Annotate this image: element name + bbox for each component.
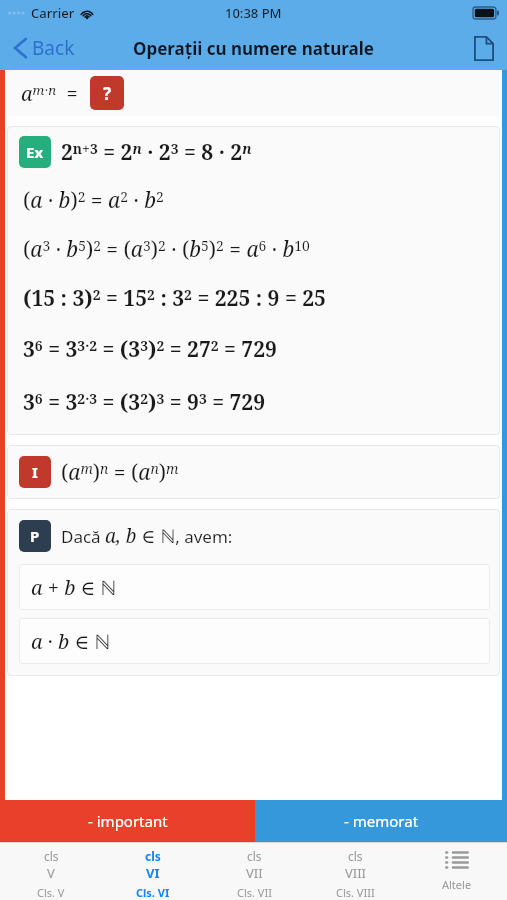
staticText: VIII	[345, 864, 367, 882]
staticText: Cls. VI	[136, 885, 170, 900]
staticText: Cls. V	[37, 885, 65, 900]
staticText: 36 = 32·3 = (32)3 = 93 = 729	[23, 388, 266, 417]
staticText: Back	[32, 35, 75, 61]
staticText: (15 : 3)2 = 152 : 32 = 225 : 9 = 25	[23, 284, 326, 313]
staticText: ?	[103, 82, 112, 105]
button[interactable]: - important	[0, 800, 255, 842]
staticText: cls	[348, 848, 363, 864]
button[interactable]: cls	[305, 842, 406, 900]
staticText: V	[47, 864, 55, 882]
button[interactable]: cls	[102, 842, 204, 900]
staticText: VII	[246, 864, 263, 882]
button[interactable]: a + b ∈ ℕ	[19, 564, 490, 610]
staticText: cls	[44, 848, 59, 864]
staticText: a · b ∈ ℕ	[31, 628, 110, 655]
staticText: P	[30, 526, 40, 546]
button[interactable]: Ex	[7, 126, 500, 435]
button[interactable]: Altele	[406, 842, 507, 900]
staticText: Cls. VIII	[336, 885, 375, 900]
staticText: Operații cu numere naturale	[133, 37, 374, 60]
staticText: cls	[145, 848, 161, 864]
staticText: (am)n = (an)m	[61, 458, 179, 487]
staticText: - memorat	[344, 811, 419, 831]
staticText: Cls. VII	[237, 885, 272, 900]
staticText: VI	[146, 864, 160, 882]
staticText: Altele	[442, 877, 472, 892]
staticText: I	[32, 462, 38, 482]
staticText: 2n+3 = 2n · 23 = 8 · 2n	[61, 138, 252, 167]
button[interactable]: - memorat	[255, 800, 507, 842]
staticText: a + b ∈ ℕ	[31, 574, 117, 601]
button[interactable]: P	[7, 509, 500, 676]
staticText: am·n =	[21, 80, 78, 107]
button[interactable]: Back	[0, 26, 85, 70]
button[interactable]: cls	[204, 842, 305, 900]
button[interactable]: cls	[0, 842, 102, 900]
staticText: (a3 · b5)2 = (a3)2 · (b5)2 = a6 · b10	[23, 235, 310, 264]
button[interactable]: a · b ∈ ℕ	[19, 618, 490, 664]
staticText: 36 = 33·2 = (33)2 = 272 = 729	[23, 335, 277, 364]
staticText: 10:38 PM	[225, 4, 282, 22]
staticText: (a · b)2 = a2 · b2	[23, 186, 164, 215]
staticText: cls	[247, 848, 262, 864]
staticText: Carrier	[31, 4, 75, 22]
button[interactable]: am·n =	[7, 70, 500, 116]
staticText: Dacă a, b ∈ ℕ, avem:	[61, 523, 233, 549]
staticText: Ex	[26, 142, 44, 162]
button[interactable]: Document	[461, 26, 507, 70]
button[interactable]: I	[7, 445, 500, 499]
staticText: - important	[88, 811, 168, 831]
